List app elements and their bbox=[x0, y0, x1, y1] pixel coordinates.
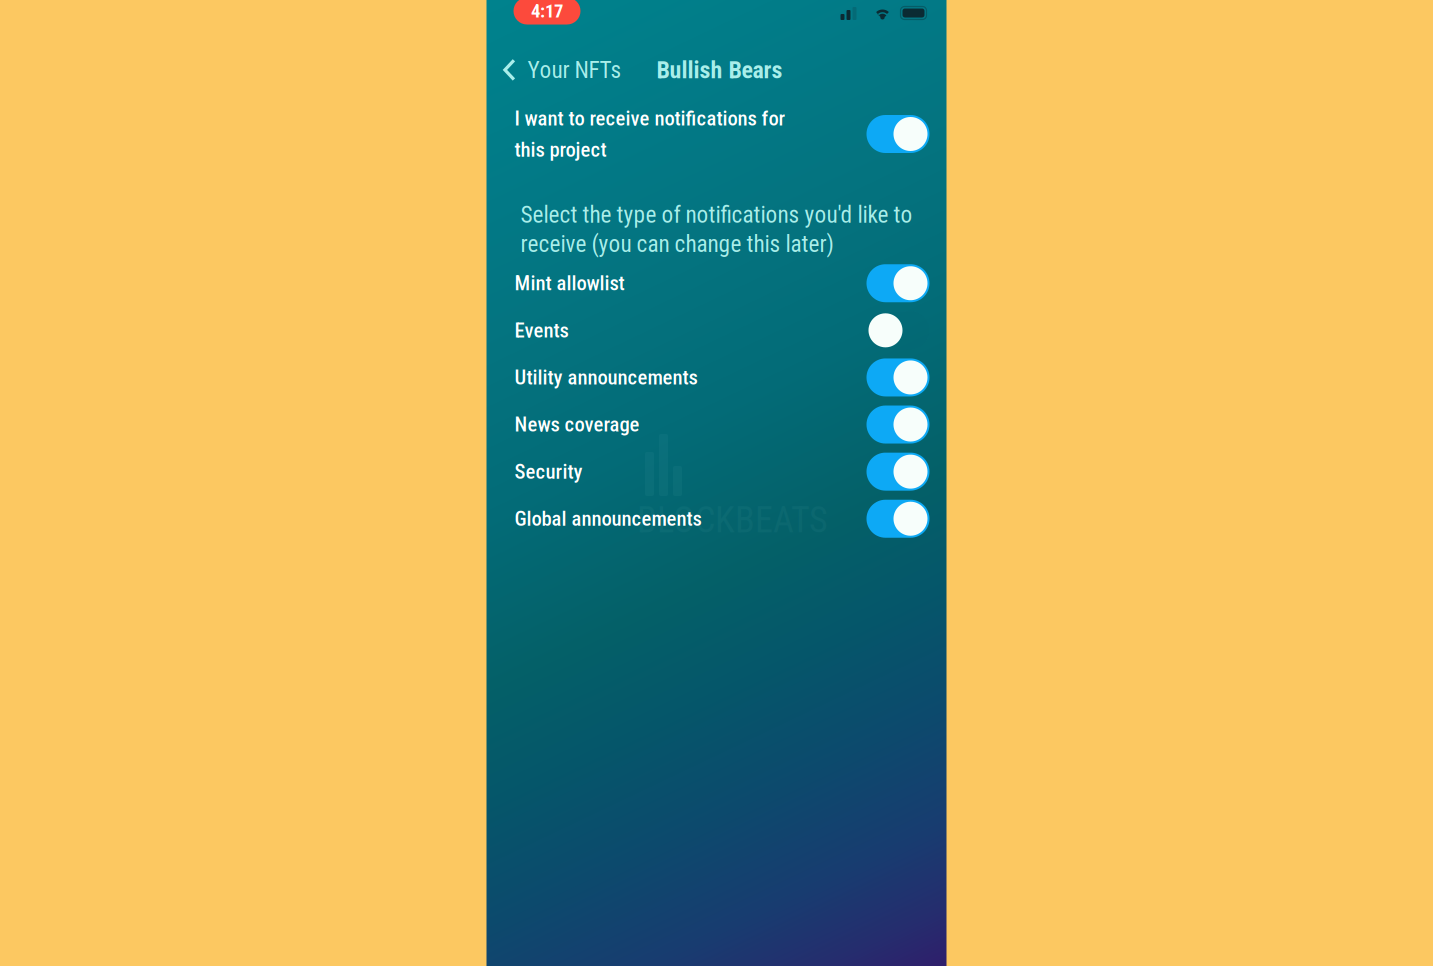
staticText: 4:17 bbox=[531, 0, 563, 22]
button[interactable]: Security bbox=[486, 448, 946, 495]
button[interactable]: Events bbox=[486, 307, 946, 354]
staticText: Global announcements bbox=[514, 507, 701, 531]
button[interactable]: Mint allowlist bbox=[486, 260, 946, 307]
button[interactable]: Back to Your NFTs bbox=[486, 48, 627, 92]
button[interactable]: News coverage bbox=[486, 401, 946, 448]
staticText: this project bbox=[514, 137, 606, 162]
staticText: Your NFTs bbox=[527, 56, 621, 84]
staticText: Bullish Bears bbox=[656, 56, 782, 84]
staticText: I want to receive notifications for bbox=[514, 106, 785, 130]
button[interactable]: Global announcements bbox=[486, 495, 946, 542]
staticText: BLOCKBEATS bbox=[637, 499, 828, 541]
button[interactable]: I want to receive notifications for bbox=[486, 109, 946, 159]
staticText: Mint allowlist bbox=[514, 271, 624, 295]
staticText: receive (you can change this later) bbox=[520, 230, 833, 258]
staticText: Security bbox=[514, 459, 582, 484]
staticText: News coverage bbox=[514, 412, 639, 437]
button[interactable]: Utility announcements bbox=[486, 354, 946, 401]
staticText: Utility announcements bbox=[514, 365, 697, 389]
staticText: Select the type of notifications you'd l… bbox=[520, 201, 912, 228]
staticText: Events bbox=[514, 318, 568, 342]
